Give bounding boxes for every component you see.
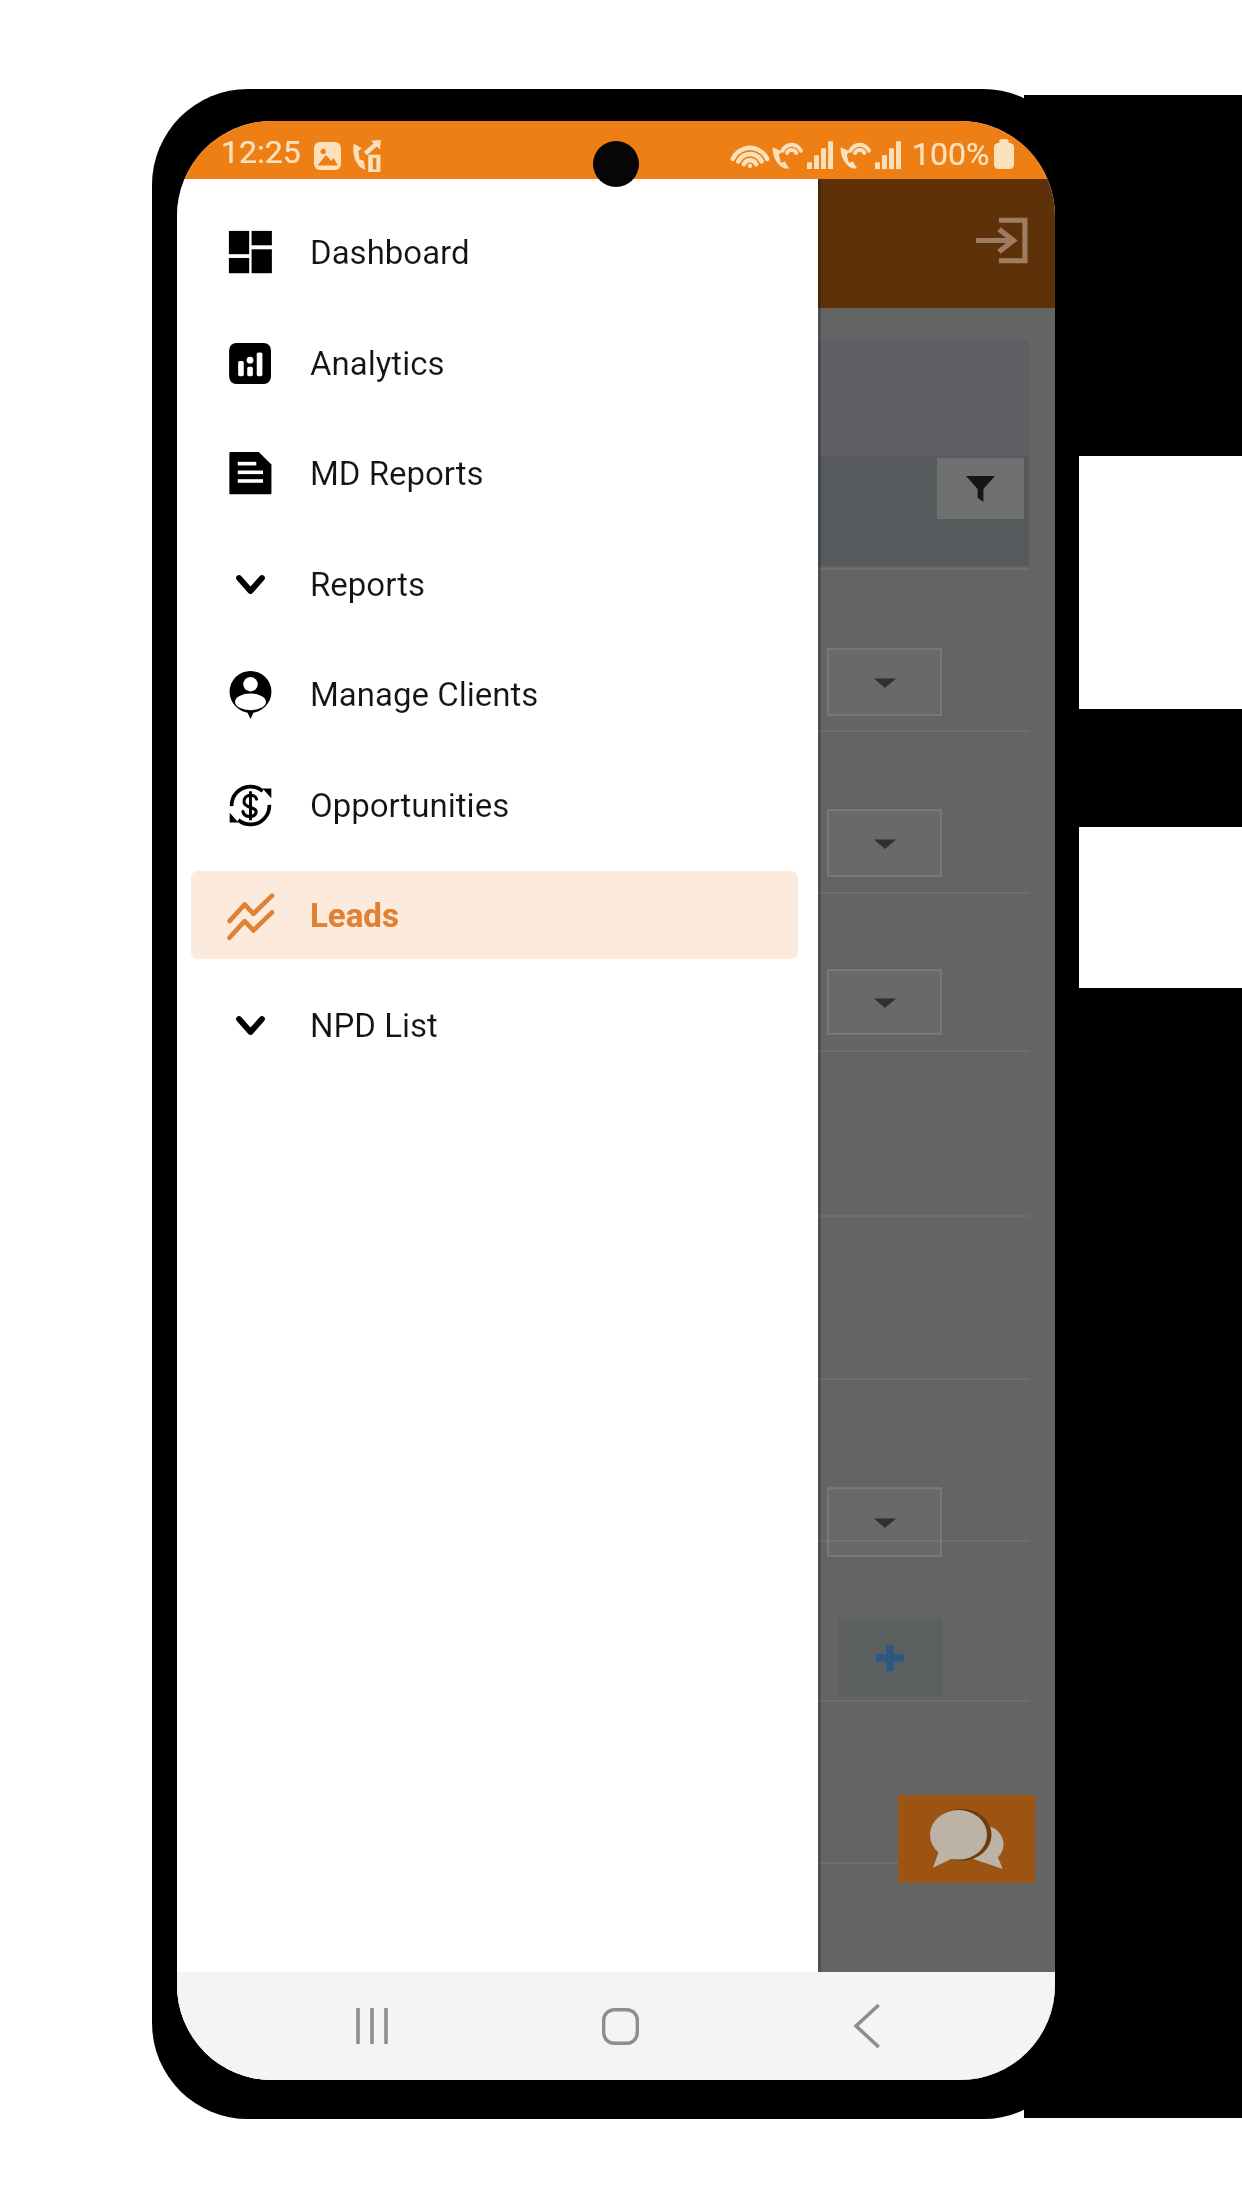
staticText: 12:25 [221, 133, 301, 171]
button[interactable]: Home [574, 1980, 666, 2072]
button[interactable]: Logout [975, 218, 1027, 263]
staticText: Manage Clients [310, 675, 539, 714]
button[interactable]: Recents [326, 1980, 418, 2072]
button[interactable]: Chat [898, 1795, 1035, 1883]
button[interactable]: Opportunities [177, 750, 818, 860]
staticText: Dashboard [310, 233, 470, 272]
staticText: MD Reports [310, 454, 484, 493]
button[interactable]: Dropdown [828, 970, 941, 1034]
button[interactable]: Dashboard [177, 197, 818, 307]
button[interactable]: Dropdown [828, 810, 941, 876]
button[interactable]: Analytics [177, 308, 818, 418]
button[interactable]: Leads [191, 871, 798, 959]
button[interactable]: MD Reports [177, 418, 818, 528]
button[interactable]: Dropdown [828, 1488, 941, 1556]
button[interactable]: Dropdown [828, 649, 941, 715]
button[interactable]: Reports [177, 529, 818, 639]
button[interactable]: Filter [937, 458, 1024, 519]
button[interactable]: Manage Clients [177, 639, 818, 749]
staticText: Leads [310, 896, 399, 935]
staticText: NPD List [310, 1006, 438, 1045]
staticText: Opportunities [310, 786, 510, 825]
staticText: 100% [912, 135, 990, 173]
staticText: Analytics [310, 344, 445, 383]
button[interactable]: NPD List [177, 970, 818, 1080]
staticText: Reports [310, 565, 426, 604]
button[interactable]: Add [838, 1619, 942, 1696]
button[interactable]: Back [821, 1980, 913, 2072]
